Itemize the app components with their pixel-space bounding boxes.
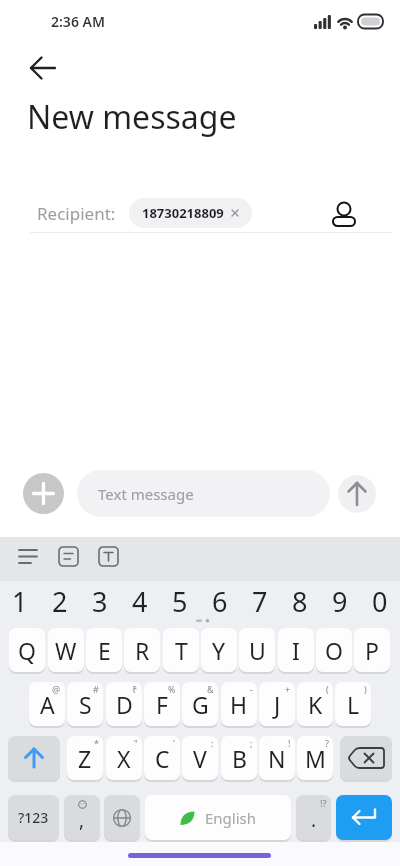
staticText: ₹ <box>132 683 138 695</box>
staticText: ? <box>325 737 329 749</box>
staticText: 18730218809 <box>142 204 224 222</box>
staticText: ) <box>364 683 367 695</box>
staticText: 9 <box>332 583 348 613</box>
staticText: 6 <box>212 583 228 613</box>
button[interactable]: R <box>124 628 160 672</box>
staticText: V <box>193 743 207 774</box>
button[interactable]: W <box>48 628 84 672</box>
staticText: E <box>98 635 111 666</box>
button[interactable]: P <box>354 628 390 672</box>
staticText: B <box>232 743 247 774</box>
button[interactable]: Q <box>9 628 45 672</box>
staticText: ?123 <box>18 808 49 827</box>
button[interactable]: 2 <box>43 583 77 613</box>
staticText: F <box>156 689 168 720</box>
button[interactable]: O <box>316 628 352 672</box>
button[interactable]: A <box>29 682 65 726</box>
button[interactable]: 0 <box>363 583 397 613</box>
staticText: Q <box>18 635 36 666</box>
button[interactable]: J <box>259 682 295 726</box>
button[interactable]: . <box>296 795 331 840</box>
staticText: : <box>211 737 214 749</box>
staticText: 7 <box>252 583 268 613</box>
staticText: D <box>116 689 133 720</box>
button[interactable]: 4 <box>123 583 157 613</box>
button[interactable]: S <box>67 682 103 726</box>
button[interactable]: Y <box>201 628 237 672</box>
staticText: & <box>207 683 214 695</box>
button[interactable] <box>12 541 44 577</box>
button[interactable]: 3 <box>83 583 117 613</box>
staticText: P <box>365 635 379 666</box>
button[interactable]: 6 <box>203 583 237 613</box>
button[interactable] <box>338 475 376 513</box>
staticText: # <box>93 683 99 695</box>
staticText: 8 <box>292 583 308 613</box>
staticText: !? <box>320 797 327 809</box>
staticText: . <box>311 807 317 833</box>
button[interactable]: 9 <box>323 583 357 613</box>
staticText: 0 <box>372 583 388 613</box>
button[interactable]: English <box>145 795 291 840</box>
staticText: ( <box>326 683 329 695</box>
button[interactable] <box>23 473 64 514</box>
staticText: H <box>230 689 248 720</box>
staticText: 4 <box>132 583 148 613</box>
button[interactable]: ?123 <box>8 795 59 840</box>
staticText: Recipient: <box>37 202 116 225</box>
button[interactable]: T <box>163 628 199 672</box>
button[interactable]: 5 <box>163 583 197 613</box>
staticText: ; <box>250 737 253 749</box>
button[interactable]: 8 <box>283 583 317 613</box>
staticText: English <box>205 808 257 828</box>
staticText: U <box>249 635 266 666</box>
staticText: ! <box>288 737 291 749</box>
staticText: * <box>94 737 99 749</box>
button[interactable] <box>332 199 358 227</box>
button[interactable]: , <box>64 795 100 840</box>
button[interactable] <box>336 795 392 840</box>
button[interactable]: M <box>297 736 333 780</box>
staticText: T <box>175 635 188 666</box>
button[interactable]: G <box>182 682 218 726</box>
button[interactable]: L <box>335 682 371 726</box>
staticText: W <box>55 635 77 666</box>
button[interactable]: U <box>239 628 275 672</box>
button[interactable]: B <box>221 736 257 780</box>
staticText: - <box>250 683 253 695</box>
staticText: I <box>292 635 300 666</box>
button[interactable] <box>53 541 85 577</box>
button[interactable] <box>26 54 58 82</box>
button[interactable]: H <box>221 682 257 726</box>
staticText: 2:36 AM <box>51 12 105 31</box>
staticText: G <box>192 689 209 720</box>
button[interactable]: D <box>106 682 142 726</box>
staticText: + <box>285 683 291 695</box>
button[interactable] <box>8 736 60 780</box>
staticText: X <box>117 743 131 774</box>
staticText: A <box>40 689 55 720</box>
staticText: J <box>274 689 281 720</box>
button[interactable]: N <box>259 736 295 780</box>
staticText: M <box>305 743 326 774</box>
button[interactable]: 7 <box>243 583 277 613</box>
staticText: 5 <box>172 583 188 613</box>
staticText: S <box>79 689 92 720</box>
button[interactable]: I <box>278 628 314 672</box>
button[interactable] <box>104 795 140 840</box>
button[interactable] <box>340 736 392 780</box>
button[interactable]: X <box>106 736 142 780</box>
button[interactable]: C <box>144 736 180 780</box>
button[interactable]: E <box>86 628 122 672</box>
staticText: 2 <box>52 583 68 613</box>
button[interactable]: 1 <box>3 583 37 613</box>
staticText: R <box>135 635 150 666</box>
button[interactable] <box>93 541 125 577</box>
button[interactable]: F <box>144 682 180 726</box>
button[interactable]: V <box>182 736 218 780</box>
staticText: Y <box>212 635 226 666</box>
button[interactable]: K <box>297 682 333 726</box>
button[interactable]: Text message <box>77 470 330 517</box>
button[interactable]: 18730218809 <box>129 198 252 228</box>
button[interactable]: Z <box>67 736 103 780</box>
